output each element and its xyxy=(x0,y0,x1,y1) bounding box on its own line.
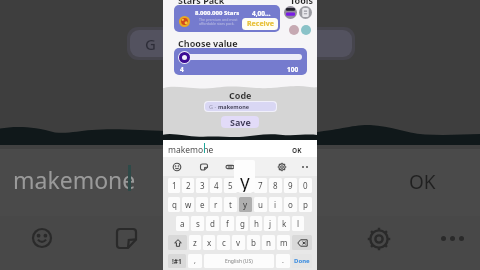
button[interactable]: a xyxy=(176,216,189,231)
staticText: j xyxy=(269,218,272,229)
button[interactable]: w xyxy=(182,197,194,212)
button[interactable]: Shift xyxy=(168,235,187,250)
button[interactable]: 3 xyxy=(196,178,208,193)
button[interactable]: Save xyxy=(221,116,259,128)
staticText: a xyxy=(180,218,185,229)
button[interactable]: y xyxy=(239,197,252,212)
button[interactable]: Space xyxy=(204,254,274,268)
staticText: d xyxy=(210,218,215,229)
staticText: 6 xyxy=(243,180,248,191)
button[interactable]: !#1 xyxy=(168,254,186,268)
staticText: 1 xyxy=(172,180,177,191)
staticText: c xyxy=(222,237,226,248)
button[interactable]: z xyxy=(189,235,201,250)
button[interactable]: G - xyxy=(204,101,277,112)
staticText: makemone xyxy=(168,144,214,156)
staticText: f xyxy=(226,218,229,229)
staticText: w xyxy=(185,199,192,210)
button[interactable]: n xyxy=(262,235,275,250)
button[interactable]: p xyxy=(299,197,312,212)
staticText: OK xyxy=(292,146,302,155)
staticText: h xyxy=(254,218,259,229)
staticText: , xyxy=(194,256,196,266)
button[interactable]: e xyxy=(196,197,208,212)
button[interactable]: 8.000.000 Stars xyxy=(174,5,280,32)
button[interactable]: i xyxy=(269,197,282,212)
staticText: y xyxy=(240,169,250,192)
button[interactable]: 9 xyxy=(284,178,297,193)
staticText: y xyxy=(243,199,248,210)
staticText: makemone xyxy=(218,103,250,110)
staticText: o xyxy=(288,199,293,210)
button[interactable]: f xyxy=(221,216,234,231)
button[interactable]: 5 xyxy=(224,178,237,193)
button[interactable]: More options xyxy=(301,162,311,172)
button[interactable]: 0 xyxy=(299,178,312,193)
staticText: Tools xyxy=(290,0,314,6)
button[interactable]: k xyxy=(278,216,290,231)
button[interactable]: q xyxy=(168,197,180,212)
staticText: 3 xyxy=(200,180,205,191)
button[interactable]: Done xyxy=(292,254,312,268)
staticText: n xyxy=(266,237,271,248)
button[interactable]: Tool xyxy=(299,6,312,19)
button[interactable]: Period xyxy=(276,254,290,268)
staticText: g xyxy=(240,218,245,229)
button[interactable]: h xyxy=(250,216,262,231)
button[interactable]: m xyxy=(277,235,290,250)
staticText: k xyxy=(282,218,287,229)
button[interactable]: Tool xyxy=(287,23,300,36)
button[interactable]: 6 xyxy=(239,178,252,193)
button[interactable]: Backspace xyxy=(292,235,312,250)
staticText: !#1 xyxy=(172,257,182,266)
button[interactable]: r xyxy=(210,197,222,212)
staticText: Receive xyxy=(247,19,274,29)
button[interactable]: o xyxy=(284,197,297,212)
button[interactable]: v xyxy=(232,235,245,250)
button[interactable]: Slider xyxy=(178,51,191,64)
staticText: z xyxy=(193,237,197,248)
button[interactable]: 7 xyxy=(254,178,267,193)
staticText: English (US) xyxy=(225,258,253,265)
staticText: 9 xyxy=(288,180,293,191)
staticText: G - xyxy=(145,34,169,54)
button[interactable]: d xyxy=(206,216,219,231)
staticText: Choose value xyxy=(178,37,238,49)
button[interactable]: Settings xyxy=(277,162,287,172)
staticText: i xyxy=(274,199,277,210)
staticText: The premium and most affordable stars pa… xyxy=(199,17,238,26)
button[interactable]: t xyxy=(224,197,237,212)
button[interactable]: Stickers xyxy=(199,162,209,172)
button[interactable]: 8 xyxy=(269,178,282,193)
button[interactable]: u xyxy=(254,197,267,212)
staticText: u xyxy=(258,199,263,210)
staticText: 4,00… xyxy=(252,9,271,18)
staticText: OK xyxy=(409,169,436,195)
button[interactable]: 4 xyxy=(210,178,222,193)
button[interactable]: Comma xyxy=(188,254,202,268)
button[interactable]: Receive xyxy=(242,18,278,30)
button[interactable]: GIF xyxy=(225,162,235,172)
staticText: l xyxy=(297,218,300,229)
button[interactable]: x xyxy=(203,235,215,250)
button[interactable]: Tool xyxy=(299,23,312,36)
button[interactable]: c xyxy=(217,235,230,250)
staticText: r xyxy=(214,199,218,210)
staticText: b xyxy=(251,237,256,248)
staticText: makemone xyxy=(13,164,136,195)
button[interactable]: b xyxy=(247,235,260,250)
staticText: 0 xyxy=(303,180,308,191)
staticText: Stars Pack xyxy=(178,0,225,6)
button[interactable]: 1 xyxy=(168,178,180,193)
button[interactable]: g xyxy=(236,216,248,231)
button[interactable]: j xyxy=(264,216,276,231)
button[interactable]: Tool xyxy=(284,6,297,19)
button[interactable]: Emoji xyxy=(172,162,182,172)
staticText: e xyxy=(200,199,205,210)
button[interactable]: s xyxy=(191,216,204,231)
button[interactable]: OK xyxy=(289,143,305,158)
staticText: 2 xyxy=(186,180,191,191)
button[interactable]: 2 xyxy=(182,178,194,193)
button[interactable]: l xyxy=(292,216,304,231)
staticText: Code xyxy=(229,89,252,101)
